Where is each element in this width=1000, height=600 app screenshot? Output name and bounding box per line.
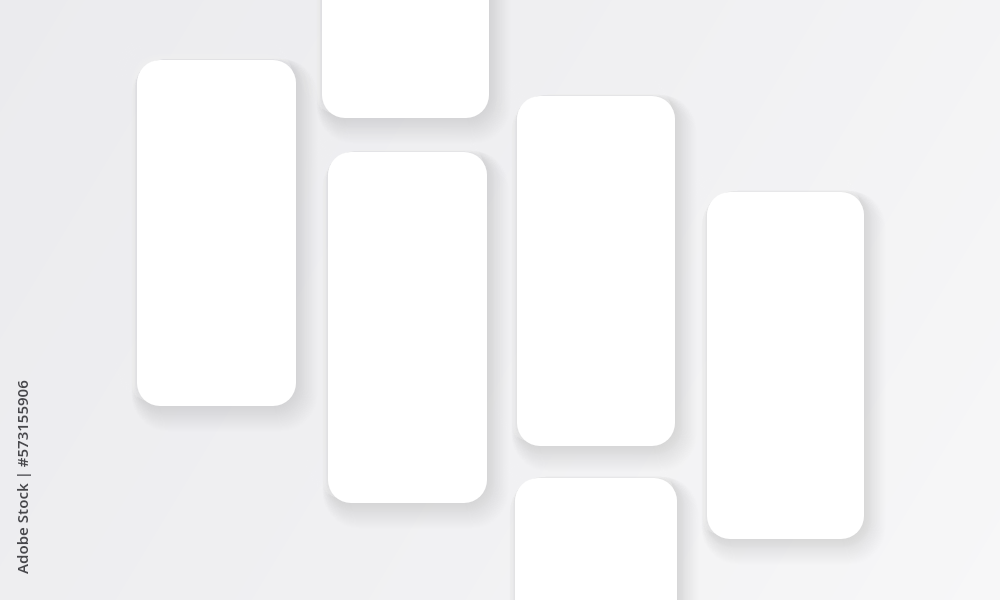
button[interactable]: App screen 2 [322,0,489,118]
